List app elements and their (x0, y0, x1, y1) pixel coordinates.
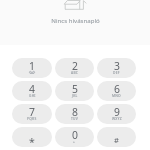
staticText: 3 (114, 59, 120, 73)
staticText: MNO (112, 93, 121, 97)
staticText: DEF (113, 70, 120, 74)
button[interactable]: Five J K L (55, 81, 94, 101)
staticText: WXYZ (112, 116, 122, 120)
staticText: GHI (29, 93, 36, 97)
button[interactable]: Six M N O (97, 81, 136, 101)
button[interactable]: Pound (97, 127, 136, 147)
staticText: 7 (29, 105, 35, 119)
button[interactable]: Two A B C (55, 58, 94, 78)
staticText: 6 (114, 82, 120, 96)
staticText: 8 (72, 105, 78, 119)
staticText: Nincs hívásnapló (51, 16, 100, 24)
staticText: # (114, 135, 119, 145)
staticText: TUV (71, 116, 79, 120)
button[interactable]: Star (12, 127, 52, 147)
staticText: 9 (114, 105, 120, 119)
staticText: * (29, 135, 35, 147)
staticText: 0 (72, 128, 78, 142)
staticText: + (73, 139, 76, 143)
button[interactable]: Eight T U V (55, 104, 94, 124)
staticText: 4 (29, 82, 35, 96)
staticText: 1 (29, 59, 35, 73)
button[interactable]: One, voicemail (12, 58, 52, 78)
button[interactable]: Seven P Q R S (12, 104, 52, 124)
staticText: 5 (72, 82, 78, 96)
other: No call history (64, 0, 88, 10)
button[interactable]: Nine W X Y Z (97, 104, 136, 124)
button[interactable]: Three D E F (97, 58, 136, 78)
staticText: JKL (72, 93, 78, 97)
button[interactable]: Zero plus (55, 127, 94, 147)
staticText: 2 (72, 59, 78, 73)
staticText: PQRS (27, 116, 37, 120)
staticText: ABC (71, 70, 79, 74)
button[interactable]: Four G H I (12, 81, 52, 101)
